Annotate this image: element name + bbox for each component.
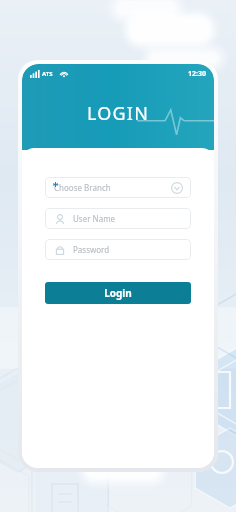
- staticText: User Name: [73, 213, 116, 224]
- staticText: Login: [104, 286, 132, 300]
- staticText: ATS: [42, 70, 53, 78]
- button[interactable]: Choose Branch: [45, 177, 191, 198]
- button[interactable]: Password: [45, 239, 191, 260]
- staticText: 12:30: [188, 69, 206, 79]
- button[interactable]: User Name: [45, 208, 191, 229]
- button[interactable]: Login: [45, 282, 191, 304]
- staticText: Password: [73, 244, 110, 255]
- button[interactable]: Open branch dropdown: [171, 182, 183, 194]
- staticText: Choose Branch: [54, 182, 111, 193]
- staticText: LOGIN: [87, 101, 150, 126]
